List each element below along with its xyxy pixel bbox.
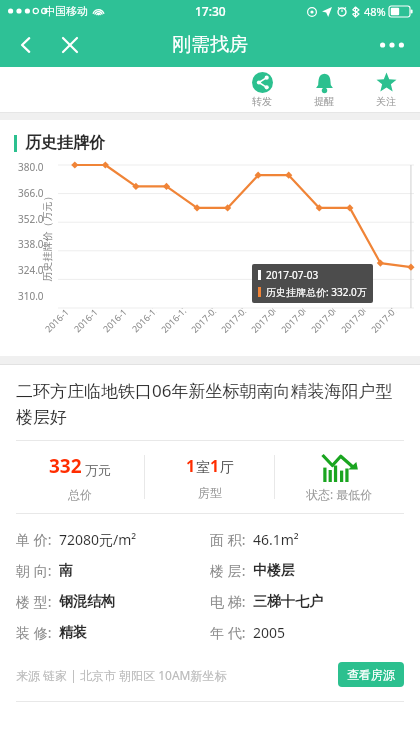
staticText: 中国移动: [44, 4, 88, 18]
staticText: 三梯十七户: [253, 593, 323, 611]
staticText: 南: [59, 562, 73, 580]
staticText: 厅: [220, 459, 234, 477]
staticText: 17:30: [195, 3, 226, 19]
staticText: 72080元/m²: [59, 530, 137, 549]
staticText: 2017-06-14: [278, 305, 308, 335]
staticText: 历史挂牌价: [25, 133, 105, 153]
staticText: 2017-03-11: [218, 305, 248, 335]
staticText: 2016-11-22: [71, 305, 100, 334]
staticText: 状态: 最低价: [306, 486, 373, 502]
staticText: 2017-06-22: [338, 305, 368, 335]
staticText: 来源 链家 | 北京市 朝阳区 10AM新坐标: [16, 667, 227, 683]
staticText: 二环方庄临地铁口06年新坐标朝南向精装海阳户型楼层好: [16, 379, 404, 428]
staticText: 提醒: [314, 95, 334, 108]
button[interactable]: Follow: [366, 72, 406, 108]
staticText: 2016-12-07: [129, 305, 158, 334]
staticText: 楼 层:: [210, 561, 246, 580]
staticText: 年 代:: [210, 623, 246, 642]
staticText: 2017-06-13: [248, 305, 278, 335]
staticText: 1: [186, 455, 196, 477]
staticText: 2017-03-10: [188, 305, 218, 335]
staticText: 朝 向:: [16, 561, 52, 580]
staticText: 中楼层: [253, 562, 295, 580]
staticText: 2016-12-08: [158, 305, 188, 335]
staticText: 338.0: [18, 237, 44, 251]
staticText: 总价: [68, 487, 92, 502]
staticText: 2016-11-23: [100, 305, 129, 334]
staticText: 关注: [376, 95, 396, 108]
staticText: 万元: [85, 462, 111, 478]
staticText: 352.0: [18, 212, 44, 226]
staticText: 2017-07-03: [266, 268, 319, 282]
staticText: 室: [196, 459, 210, 477]
button[interactable]: Share: [242, 72, 282, 108]
button[interactable]: Close: [52, 27, 88, 63]
staticText: 转发: [252, 95, 272, 108]
staticText: 刚需找房: [172, 33, 248, 57]
staticText: 2016-11-15: [42, 305, 71, 334]
button[interactable]: More options: [372, 25, 412, 65]
staticText: 366.0: [18, 186, 44, 200]
staticText: 46.1m²: [253, 530, 299, 549]
staticText: 单 价:: [16, 530, 52, 549]
button[interactable]: Back: [8, 27, 44, 63]
staticText: 装 修:: [16, 623, 52, 642]
button[interactable]: Reminder: [304, 72, 344, 108]
staticText: 332: [49, 453, 82, 479]
staticText: 楼 型:: [16, 592, 52, 611]
staticText: 2005: [253, 623, 286, 642]
staticText: 324.0: [18, 263, 44, 277]
staticText: 电 梯:: [210, 592, 246, 611]
staticText: 面 积:: [210, 530, 246, 549]
staticText: 48%: [364, 4, 386, 19]
staticText: 2017-06-21: [308, 305, 338, 335]
staticText: 2017-07-03: [368, 305, 398, 335]
staticText: 380.0: [18, 160, 44, 174]
staticText: 精装: [59, 624, 87, 642]
staticText: 查看房源: [347, 667, 395, 682]
staticText: 310.0: [18, 289, 44, 303]
staticText: 1: [210, 455, 220, 477]
staticText: 钢混结构: [59, 593, 115, 611]
staticText: 历史挂牌总价: 332.0万: [266, 285, 367, 299]
staticText: 房型: [198, 485, 222, 500]
button[interactable]: 查看房源: [338, 662, 404, 687]
staticText: 历史挂牌价（万元）: [40, 191, 53, 281]
